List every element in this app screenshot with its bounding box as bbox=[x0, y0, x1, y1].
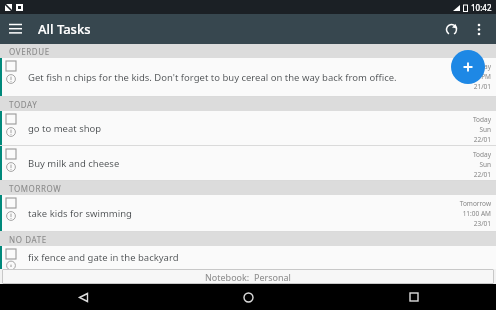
staticText: Buy milk and cheese bbox=[28, 157, 120, 170]
button[interactable]: fix fence and gate in the backyard bbox=[0, 246, 496, 269]
button[interactable]: More options bbox=[466, 14, 492, 44]
staticText: fix fence and gate in the backyard bbox=[28, 251, 179, 264]
button[interactable]: Recent apps bbox=[331, 284, 496, 310]
button[interactable]: Add task bbox=[451, 50, 485, 84]
staticText: Notebook: Personal bbox=[205, 271, 291, 283]
staticText: 10:42 bbox=[471, 2, 492, 13]
staticText: 22/01 bbox=[473, 170, 491, 179]
button[interactable]: Open navigation drawer bbox=[0, 14, 30, 44]
staticText: Today bbox=[472, 115, 491, 124]
staticText: 23/01 bbox=[473, 219, 491, 228]
button[interactable]: take kids for swimming bbox=[0, 195, 496, 231]
staticText: go to meat shop bbox=[28, 122, 102, 135]
staticText: take kids for swimming bbox=[28, 207, 132, 220]
staticText: 21/01 bbox=[473, 82, 491, 91]
staticText: 22/01 bbox=[473, 135, 491, 144]
staticText: Today bbox=[472, 150, 491, 159]
staticText: TOMORROW bbox=[9, 183, 62, 194]
staticText: Get fish n chips for the kids. Don't for… bbox=[28, 71, 397, 84]
staticText: Sun bbox=[479, 125, 491, 134]
button[interactable]: Home bbox=[166, 284, 331, 310]
staticText: All Tasks bbox=[38, 20, 91, 38]
button[interactable]: Buy milk and cheese bbox=[0, 146, 496, 180]
button[interactable]: go to meat shop bbox=[0, 111, 496, 145]
staticText: Tomorrow bbox=[459, 199, 491, 208]
staticText: TODAY bbox=[9, 99, 38, 110]
staticText: 09:00 PM bbox=[462, 72, 491, 81]
staticText: 11:00 AM bbox=[462, 209, 491, 218]
button[interactable]: Refresh bbox=[436, 14, 466, 44]
staticText: NO DATE bbox=[9, 234, 47, 245]
staticText: OVERDUE bbox=[9, 46, 50, 57]
button[interactable]: Back bbox=[0, 284, 166, 310]
staticText: Yesterday bbox=[461, 62, 491, 71]
button[interactable]: Notebook: Personal bbox=[2, 269, 494, 284]
staticText: Sun bbox=[479, 160, 491, 169]
button[interactable]: Get fish n chips for the kids. Don't for… bbox=[0, 58, 496, 96]
